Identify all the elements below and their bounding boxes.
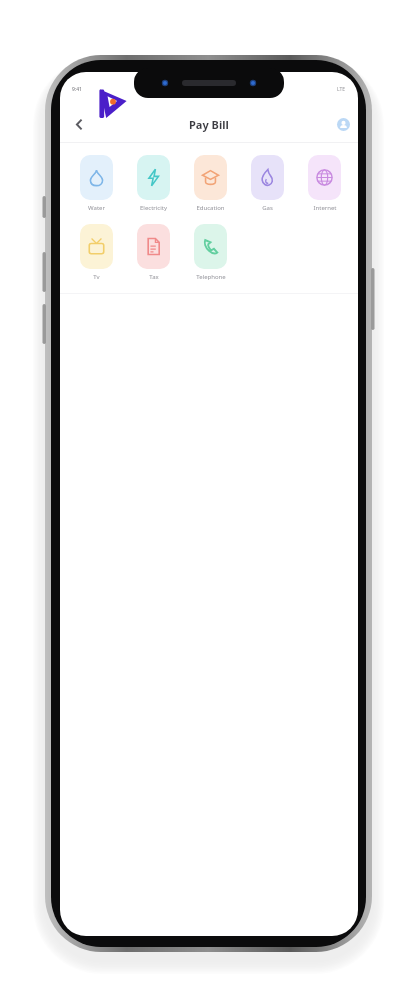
button[interactable]: Electricity bbox=[125, 153, 182, 214]
staticText: Pay Bill bbox=[189, 117, 229, 132]
staticText: Telephone bbox=[196, 273, 226, 281]
staticText: Education bbox=[196, 204, 225, 212]
button[interactable]: Education bbox=[182, 153, 239, 214]
staticText: 9:41 bbox=[72, 86, 82, 93]
staticText: Internet bbox=[313, 204, 337, 212]
button[interactable]: Internet bbox=[296, 153, 353, 214]
staticText: LTE bbox=[337, 86, 346, 93]
staticText: Water bbox=[88, 204, 105, 212]
staticText: Electricity bbox=[140, 204, 167, 212]
button[interactable]: Profile bbox=[332, 113, 354, 135]
button[interactable]: Back bbox=[66, 111, 92, 137]
staticText: Gas bbox=[262, 204, 273, 212]
button[interactable]: Water bbox=[68, 153, 125, 214]
button[interactable]: Gas bbox=[239, 153, 296, 214]
button[interactable]: Tax bbox=[125, 222, 182, 283]
staticText: Tv bbox=[93, 273, 100, 281]
button[interactable]: Telephone bbox=[182, 222, 239, 283]
staticText: Tax bbox=[149, 273, 159, 281]
button[interactable]: Tv bbox=[68, 222, 125, 283]
